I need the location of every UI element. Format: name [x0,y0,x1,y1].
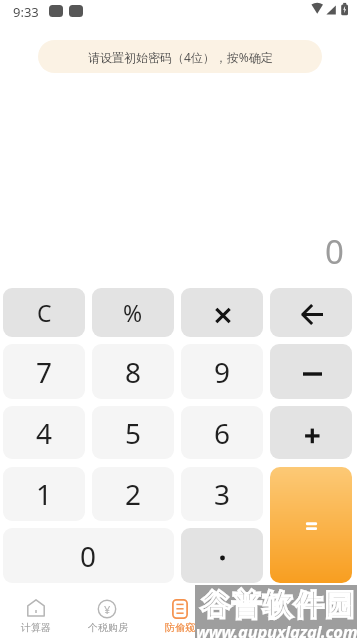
button[interactable] [181,288,263,337]
button[interactable] [181,528,263,583]
staticText: 6 [214,414,231,452]
button[interactable]: 7 [3,344,85,399]
staticText: 7 [36,353,53,391]
staticText: 1 [36,475,53,513]
staticText: 计算器 [21,621,51,634]
staticText: 3 [214,475,231,513]
staticText: 9 [214,353,231,391]
button[interactable]: 3 [181,467,263,521]
staticText: 0 [325,229,344,271]
staticText: % [123,297,143,328]
button[interactable]: 1 [3,467,85,521]
staticText: ¥ [104,602,111,617]
button[interactable] [270,406,352,459]
button[interactable]: 5 [92,406,174,459]
staticText: 8 [125,353,142,391]
button[interactable] [78,592,138,640]
staticText: 请设置初始密码（4位），按%确定 [88,49,273,65]
button[interactable]: % [92,288,174,337]
button[interactable]: 9 [181,344,263,399]
staticText: 谷普软件园 [200,587,355,624]
button[interactable] [270,344,352,399]
staticText: www.gupuxlazal.com [196,620,358,640]
staticText: 2 [125,475,142,513]
staticText: 5 [125,414,142,452]
button[interactable]: 8 [92,344,174,399]
staticText: 个税购房 [88,621,128,634]
button[interactable]: 0 [3,528,174,583]
button[interactable]: 4 [3,406,85,459]
button[interactable]: 6 [181,406,263,459]
button[interactable]: 2 [92,467,174,521]
button[interactable] [6,592,66,640]
staticText: C [37,297,52,328]
button[interactable]: C [3,288,85,337]
button[interactable]: 请设置初始密码（4位），按%确定 [38,40,322,73]
staticText: 9:33 [13,3,39,21]
button[interactable] [270,288,352,337]
staticText: 防偷窥 [165,621,195,634]
button[interactable] [270,467,352,583]
staticText: 4 [36,414,53,452]
button[interactable] [150,592,210,640]
staticText: 0 [80,537,97,575]
